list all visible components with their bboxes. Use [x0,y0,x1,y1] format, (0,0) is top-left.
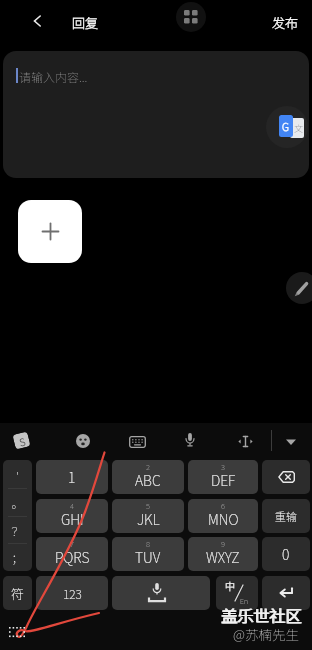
button[interactable]: 123 [36,576,108,610]
button[interactable]: WXYZ [188,537,258,571]
staticText: DEF [211,470,236,490]
staticText: 3 [221,461,225,472]
staticText: 请输入内容... [19,68,88,85]
staticText: MNO [208,509,239,529]
button[interactable] [284,437,298,447]
staticText: 1 [68,467,76,487]
button[interactable]: 符 [3,576,32,610]
staticText: 文 [294,122,304,135]
staticText: 中 [225,578,235,592]
button[interactable]: GHI [36,499,108,533]
button[interactable] [184,432,196,449]
staticText: 盖乐世社区 [221,603,302,626]
button[interactable] [286,272,312,304]
staticText: 重输 [275,508,297,524]
staticText: ' [16,468,19,485]
staticText: ； [11,549,24,566]
staticText: PQRS [55,547,90,567]
button[interactable]: 发布 [268,10,302,32]
button[interactable] [237,435,254,448]
staticText: JKL [137,509,160,529]
staticText: 5 [146,500,150,511]
button[interactable] [262,460,310,494]
staticText: 6 [221,500,225,511]
staticText: 发布 [272,13,299,32]
staticText: 回复 [72,13,99,32]
staticText: 4 [70,500,74,511]
staticText: 123 [63,585,82,602]
staticText: TUV [135,547,161,567]
button[interactable]: 文 [266,106,308,148]
button[interactable]: 中 [216,576,258,610]
button[interactable]: 重输 [262,499,310,533]
button[interactable]: 请输入内容... [3,51,309,178]
staticText: WXYZ [206,547,240,567]
button[interactable]: PQRS [36,537,108,571]
button[interactable]: 0 [262,537,310,571]
button[interactable]: ABC [112,460,184,494]
button[interactable]: TUV [112,537,184,571]
staticText: ？ [11,522,24,539]
staticText: S [17,433,27,448]
staticText: 盖乐世社区 [222,603,303,626]
button[interactable] [262,576,310,610]
staticText: 2 [146,461,150,472]
button[interactable] [129,436,146,448]
button[interactable] [18,200,82,263]
staticText: 9 [221,538,225,549]
button[interactable] [26,10,48,32]
staticText: G [282,119,289,134]
button[interactable] [75,433,91,449]
button[interactable]: ' [3,460,32,571]
staticText: @苏楠先生 [233,624,299,644]
staticText: 8 [146,538,150,549]
button[interactable] [176,2,206,32]
button[interactable]: MNO [188,499,258,533]
staticText: En [240,596,248,606]
button[interactable]: S [12,431,31,450]
button[interactable]: JKL [112,499,184,533]
button[interactable]: 1 [36,460,108,494]
button[interactable]: DEF [188,460,258,494]
staticText: 。 [11,494,24,511]
staticText: GHI [61,509,84,529]
staticText: 7 [70,538,74,549]
staticText: 0 [282,544,290,564]
button[interactable] [112,576,210,610]
staticText: ABC [135,470,161,490]
staticText: 符 [11,584,25,603]
